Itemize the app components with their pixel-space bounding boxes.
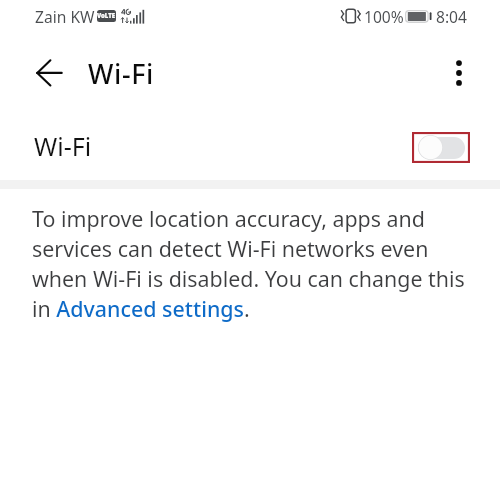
staticText: Wi-Fi <box>34 129 92 163</box>
staticText: Zain KW <box>35 6 95 27</box>
button[interactable]: Back <box>23 46 76 99</box>
staticText: Wi-Fi <box>88 55 154 92</box>
button[interactable]: More options <box>435 49 483 97</box>
button[interactable]: Wi-Fi <box>0 110 500 180</box>
staticText: 100% <box>364 6 404 27</box>
staticText: VoLTE <box>97 12 116 20</box>
staticText: To improve location accuracy, apps and s… <box>32 203 487 323</box>
staticText: 8:04 <box>436 6 467 27</box>
